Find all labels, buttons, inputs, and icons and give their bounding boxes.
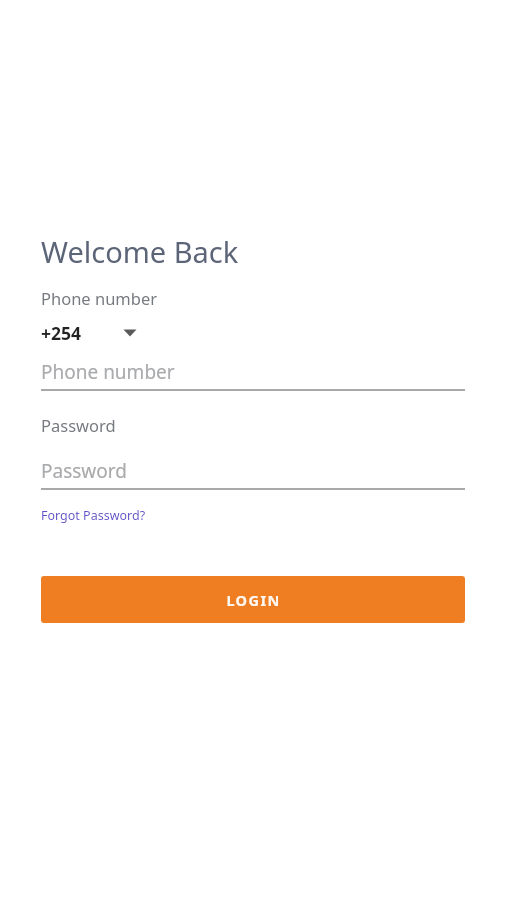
button[interactable]: +254: [41, 319, 139, 347]
staticText: Password: [41, 458, 127, 484]
staticText: Forgot Password?: [41, 507, 146, 524]
button[interactable]: Phone number: [41, 359, 465, 391]
staticText: +254: [41, 321, 82, 345]
button[interactable]: LOGIN: [41, 576, 465, 623]
other: Select country code: [121, 324, 139, 342]
staticText: Phone number: [41, 359, 175, 385]
staticText: LOGIN: [226, 590, 281, 610]
button[interactable]: Password: [41, 458, 465, 490]
button[interactable]: Forgot Password?: [41, 507, 146, 524]
staticText: Password: [41, 414, 116, 436]
staticText: Welcome Back: [41, 232, 239, 271]
staticText: Phone number: [41, 287, 158, 309]
